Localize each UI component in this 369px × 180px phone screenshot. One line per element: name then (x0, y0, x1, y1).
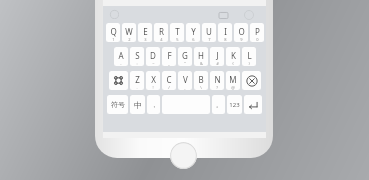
button[interactable]: Collapse keyboard (244, 10, 254, 20)
staticText: W (125, 26, 133, 37)
button[interactable]: C (162, 71, 176, 90)
staticText: ) (248, 61, 250, 66)
button[interactable]: O (234, 23, 248, 42)
staticText: ( (232, 61, 234, 66)
staticText: 符号 (111, 100, 125, 109)
button[interactable]: M (226, 71, 240, 90)
staticText: Y (191, 26, 196, 37)
staticText: K (231, 50, 236, 61)
button[interactable]: S (130, 47, 144, 66)
staticText: 6 (192, 37, 195, 42)
button[interactable] (244, 95, 262, 114)
staticText: Q (110, 26, 117, 37)
button[interactable]: K (226, 47, 240, 66)
staticText: - (120, 61, 122, 66)
staticText: Z (135, 74, 140, 85)
staticText: A (118, 50, 124, 61)
staticText: 3 (144, 37, 147, 42)
staticText: : (136, 61, 138, 66)
staticText: \ (200, 85, 202, 90)
button[interactable]: E (138, 23, 152, 42)
staticText: E (143, 26, 148, 37)
button[interactable]: Q (106, 23, 120, 42)
button[interactable]: Z (130, 71, 144, 90)
button[interactable]: W (122, 23, 136, 42)
staticText: C (166, 74, 172, 85)
staticText: 。 (216, 101, 222, 109)
staticText: M (229, 74, 237, 85)
button[interactable]: ， (147, 95, 160, 114)
staticText: T (175, 26, 180, 37)
staticText: D (150, 50, 156, 61)
staticText: R (159, 26, 164, 37)
staticText: # (216, 61, 219, 66)
staticText: @ (231, 85, 235, 90)
staticText: / (168, 85, 170, 90)
button[interactable]: N (210, 71, 224, 90)
staticText: X (151, 74, 156, 85)
button[interactable]: 123 (227, 95, 242, 114)
staticText: U (206, 26, 212, 37)
staticText: ? (216, 85, 218, 90)
button[interactable]: Keyboard layout (219, 11, 228, 20)
button[interactable]: U (202, 23, 216, 42)
staticText: 2 (128, 37, 131, 42)
button[interactable]: D (146, 47, 160, 66)
button[interactable]: I (218, 23, 232, 42)
staticText: V (183, 74, 188, 85)
staticText: S (135, 50, 140, 61)
button[interactable]: G (178, 47, 192, 66)
staticText: " (184, 61, 186, 66)
staticText: 9 (240, 37, 243, 42)
button[interactable]: Home (170, 142, 197, 169)
button[interactable]: J (210, 47, 224, 66)
staticText: 5 (176, 37, 179, 42)
staticText: 1 (112, 37, 115, 42)
button[interactable]: 符号 (107, 95, 128, 114)
staticText: 中 (134, 100, 142, 110)
button[interactable]: X (146, 71, 160, 90)
button[interactable]: T (170, 23, 184, 42)
staticText: G (182, 50, 188, 61)
staticText: & (200, 61, 203, 66)
button[interactable] (109, 71, 128, 90)
button[interactable] (242, 71, 261, 90)
button[interactable]: V (178, 71, 192, 90)
button[interactable]: Globe (110, 10, 119, 19)
staticText: J (216, 50, 219, 61)
staticText: 7 (208, 37, 211, 42)
staticText: 8 (224, 37, 227, 42)
staticText: B (198, 74, 204, 85)
staticText: , (184, 85, 186, 90)
staticText: 0 (256, 37, 259, 42)
staticText: 4 (160, 37, 163, 42)
button[interactable]: H (194, 47, 208, 66)
button[interactable]: L (242, 47, 256, 66)
button[interactable]: Y (186, 23, 200, 42)
staticText: ， (151, 101, 157, 109)
button[interactable]: R (154, 23, 168, 42)
staticText: F (167, 50, 172, 61)
staticText: ! (152, 85, 154, 90)
staticText: . (136, 85, 138, 90)
button[interactable]: P (250, 23, 264, 42)
button[interactable]: F (162, 47, 176, 66)
staticText: L (247, 50, 252, 61)
staticText: 123 (229, 101, 240, 109)
button[interactable]: 中 (130, 95, 145, 114)
button[interactable]: B (194, 71, 208, 90)
staticText: I (224, 26, 227, 37)
button[interactable]: A (114, 47, 128, 66)
staticText: N (214, 74, 221, 85)
staticText: O (238, 26, 245, 37)
button[interactable]: 。 (212, 95, 225, 114)
staticText: ~ (152, 61, 155, 66)
staticText: H (198, 50, 204, 61)
staticText: P (255, 26, 260, 37)
staticText: _ (168, 61, 170, 66)
